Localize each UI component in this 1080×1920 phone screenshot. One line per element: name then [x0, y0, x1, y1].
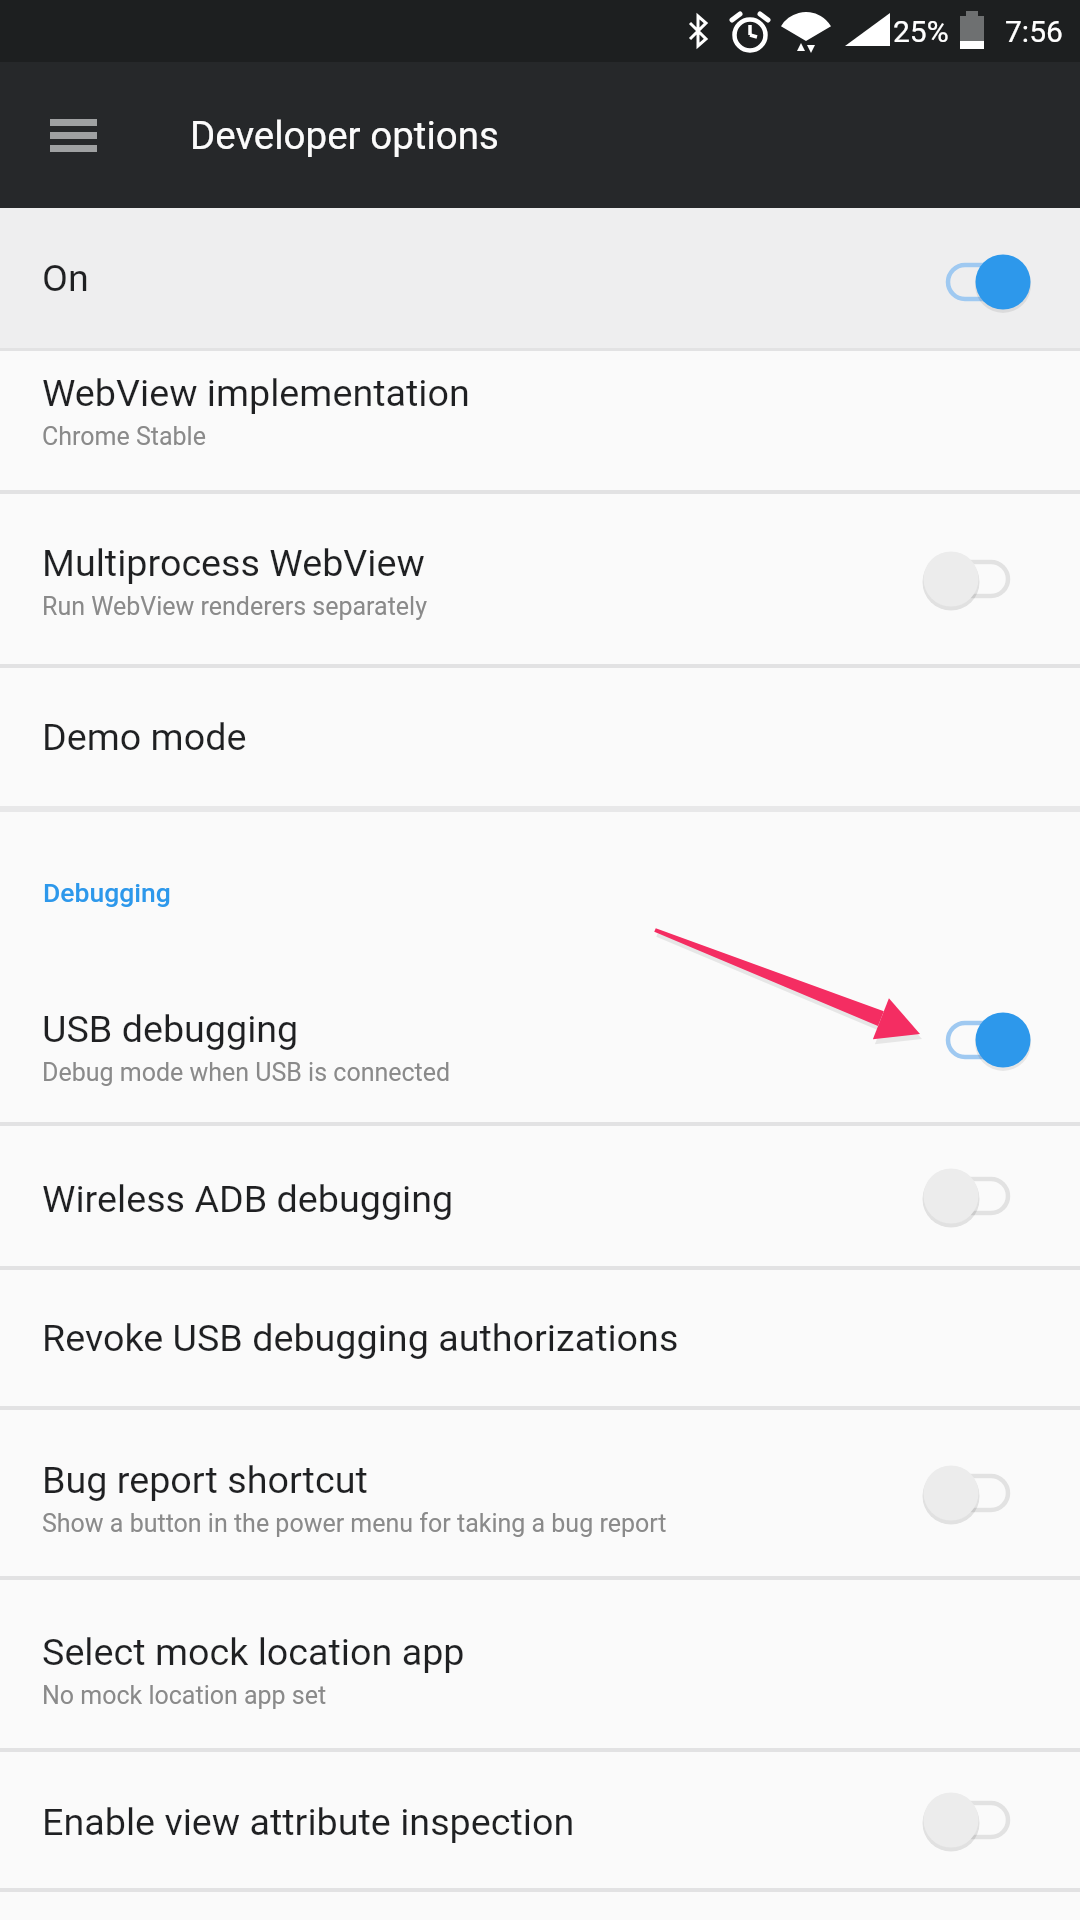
staticText: No mock location app set: [42, 1681, 327, 1710]
button[interactable]: On: [0, 208, 1080, 348]
staticText: Revoke USB debugging authorizations: [42, 1316, 679, 1360]
button[interactable]: Multiprocess WebView: [0, 494, 1080, 664]
button[interactable]: Demo mode: [0, 668, 1080, 806]
button[interactable]: USB debugging: [0, 972, 1080, 1122]
button[interactable]: Select mock location app: [0, 1580, 1080, 1748]
button[interactable]: Revoke USB debugging authorizations: [0, 1270, 1080, 1406]
staticText: Debug mode when USB is connected: [42, 1058, 451, 1087]
button[interactable]: Wireless ADB debugging: [0, 1126, 1080, 1266]
staticText: Select mock location app: [42, 1630, 465, 1674]
button[interactable]: Enable view attribute inspection: [0, 1752, 1080, 1888]
staticText: WebView implementation: [42, 371, 470, 415]
staticText: Developer options: [190, 113, 499, 158]
staticText: Debugging: [43, 877, 171, 908]
button[interactable]: WebView implementation: [0, 351, 1080, 490]
staticText: 7:56: [1005, 14, 1063, 49]
staticText: Demo mode: [42, 715, 247, 759]
staticText: Chrome Stable: [42, 422, 206, 451]
staticText: Enable view attribute inspection: [42, 1800, 575, 1844]
staticText: Bug report shortcut: [42, 1458, 368, 1502]
staticText: Show a button in the power menu for taki…: [42, 1509, 667, 1538]
staticText: USB debugging: [42, 1007, 299, 1051]
staticText: Wireless ADB debugging: [42, 1177, 454, 1221]
button[interactable]: Bug report shortcut: [0, 1410, 1080, 1576]
staticText: 25%: [893, 14, 949, 49]
staticText: On: [42, 256, 89, 300]
button[interactable]: [50, 119, 97, 152]
staticText: Multiprocess WebView: [42, 541, 425, 585]
staticText: Run WebView renderers separately: [42, 592, 427, 621]
